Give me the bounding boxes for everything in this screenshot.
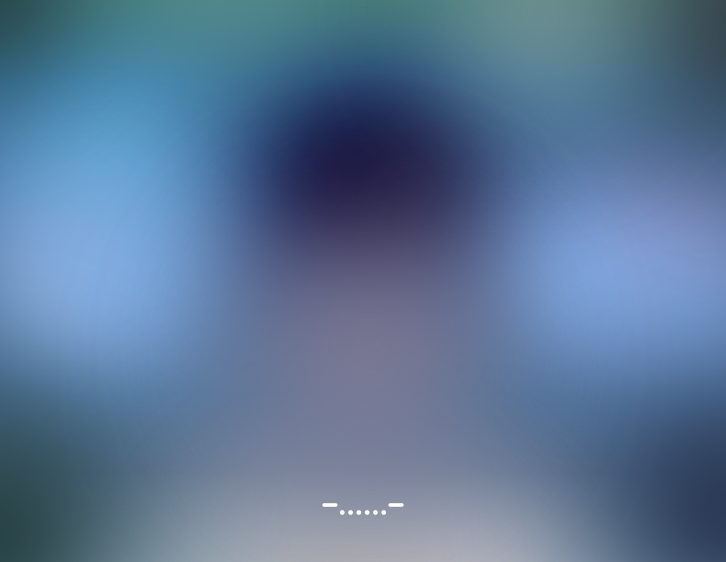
button[interactable]: Playback position (322, 500, 404, 524)
